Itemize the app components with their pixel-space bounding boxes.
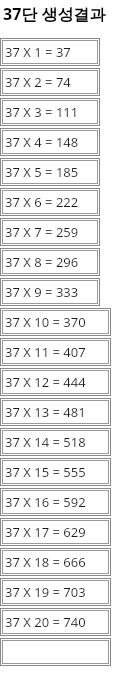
staticText: 37 X 6 = 222 (5, 193, 79, 211)
button[interactable]: 37 X 19 = 703 (0, 578, 111, 606)
button[interactable]: 37 X 16 = 592 (0, 488, 111, 516)
staticText: 37 X 19 = 703 (5, 583, 86, 601)
button[interactable]: 37 X 3 = 111 (0, 98, 100, 126)
staticText: 37 X 2 = 74 (5, 73, 71, 91)
button[interactable]: 37 X 5 = 185 (0, 158, 100, 186)
button[interactable]: 37 X 10 = 370 (0, 308, 111, 336)
staticText: 37 X 3 = 111 (5, 103, 79, 121)
staticText: 37 X 7 = 259 (5, 223, 79, 241)
button[interactable] (0, 638, 111, 666)
button[interactable]: 37 X 12 = 444 (0, 368, 111, 396)
staticText: 37 X 9 = 333 (5, 283, 79, 301)
staticText: 37 X 18 = 666 (5, 553, 86, 571)
button[interactable]: 37 X 13 = 481 (0, 398, 111, 426)
button[interactable]: 37 X 20 = 740 (0, 608, 111, 636)
button[interactable]: 37 X 2 = 74 (0, 68, 100, 96)
staticText: 37 X 4 = 148 (5, 133, 79, 151)
staticText: 37단 생성결과 (3, 3, 106, 25)
button[interactable]: 37 X 1 = 37 (0, 38, 100, 66)
button[interactable]: 37 X 8 = 296 (0, 248, 100, 276)
button[interactable]: 37 X 9 = 333 (0, 278, 100, 306)
button[interactable]: 37 X 18 = 666 (0, 548, 111, 576)
staticText: 37 X 13 = 481 (5, 403, 86, 421)
staticText: 37 X 8 = 296 (5, 253, 79, 271)
staticText: 37 X 14 = 518 (5, 433, 86, 451)
button[interactable]: 37 X 6 = 222 (0, 188, 100, 216)
button[interactable]: 37 X 14 = 518 (0, 428, 111, 456)
staticText: 37 X 16 = 592 (5, 493, 86, 511)
staticText: 37 X 20 = 740 (5, 613, 86, 631)
staticText: 37 X 10 = 370 (5, 313, 86, 331)
staticText: 37 X 1 = 37 (5, 43, 71, 61)
staticText: 37 X 17 = 629 (5, 523, 86, 541)
button[interactable]: 37 X 15 = 555 (0, 458, 111, 486)
staticText: 37 X 15 = 555 (5, 463, 86, 481)
button[interactable]: 37 X 17 = 629 (0, 518, 111, 546)
staticText: 37 X 12 = 444 (5, 373, 86, 391)
button[interactable]: 37 X 4 = 148 (0, 128, 100, 156)
button[interactable]: 37 X 11 = 407 (0, 338, 111, 366)
staticText: 37 X 11 = 407 (5, 343, 86, 361)
staticText: 37 X 5 = 185 (5, 163, 79, 181)
button[interactable]: 37 X 7 = 259 (0, 218, 100, 246)
